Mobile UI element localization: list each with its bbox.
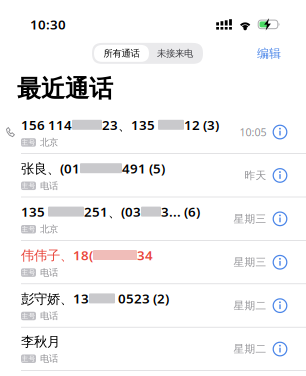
button[interactable]: More info xyxy=(268,242,292,282)
staticText: 23、135 xyxy=(102,116,158,134)
button[interactable]: 彭守娇、13 xyxy=(0,284,306,328)
staticText: 主号 xyxy=(21,225,35,233)
button[interactable]: 所有通话 xyxy=(94,45,149,62)
staticText: 156 114 xyxy=(21,116,72,134)
button[interactable]: 135 xyxy=(0,197,306,241)
staticText: 星期二 xyxy=(233,342,266,356)
staticText: 主号 xyxy=(21,182,35,190)
staticText: 主号 xyxy=(21,268,35,277)
staticText: 34 xyxy=(137,246,153,264)
staticText: 电话 xyxy=(40,267,58,278)
staticText: 彭守娇、13 xyxy=(21,290,89,307)
staticText: 主号 xyxy=(21,312,35,320)
staticText: 电话 xyxy=(40,353,58,364)
staticText: 编辑 xyxy=(257,46,281,61)
staticText: 昨天 xyxy=(244,169,266,182)
staticText: 主号 xyxy=(21,138,35,146)
staticText: 李秋月 xyxy=(21,334,60,350)
staticText: 伟伟子、18( xyxy=(21,246,93,264)
staticText: 12 (3) xyxy=(184,116,219,134)
staticText: 北京 xyxy=(40,137,58,148)
staticText: 星期三 xyxy=(233,256,266,269)
staticText: 星期三 xyxy=(233,212,266,225)
staticText: 251、(03 xyxy=(84,203,141,220)
staticText: 0523 (2) xyxy=(115,290,169,307)
staticText: 3... (6) xyxy=(161,203,200,220)
staticText: 10:30 xyxy=(30,15,66,33)
staticText: 北京 xyxy=(40,223,58,235)
staticText: 未接来电 xyxy=(157,48,193,59)
staticText: 10:05 xyxy=(239,125,266,139)
button[interactable]: More info xyxy=(268,199,292,239)
button[interactable]: More info xyxy=(268,155,292,195)
button[interactable]: More info xyxy=(268,112,292,152)
button[interactable]: 156 114 xyxy=(0,111,306,154)
staticText: 135 xyxy=(21,203,48,220)
staticText: 星期二 xyxy=(233,299,266,312)
staticText: 所有通话 xyxy=(103,48,139,59)
button[interactable]: 编辑 xyxy=(248,42,290,64)
button[interactable]: More info xyxy=(268,329,292,369)
staticText: 491 (5) xyxy=(122,159,165,177)
button[interactable]: 伟伟子、18( xyxy=(0,241,306,284)
button[interactable]: More info xyxy=(268,286,292,326)
staticText: 张良、(01 xyxy=(21,159,80,177)
staticText: 电话 xyxy=(40,180,58,192)
button[interactable]: 未接来电 xyxy=(149,45,201,62)
staticText: 电话 xyxy=(40,310,58,322)
button[interactable]: 李秋月 xyxy=(0,328,306,371)
staticText: 主号 xyxy=(21,355,35,363)
staticText: 最近通话 xyxy=(17,74,113,104)
button[interactable]: 张良、(01 xyxy=(0,154,306,197)
